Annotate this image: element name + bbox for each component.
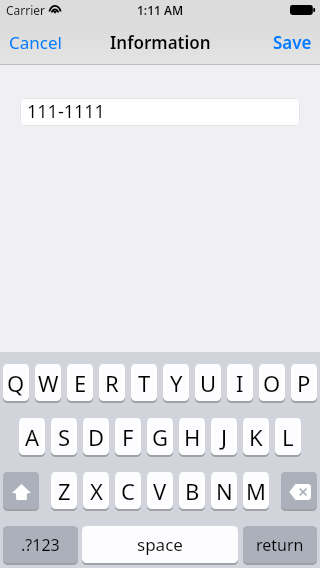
staticText: Y [170, 368, 183, 398]
staticText: E [74, 368, 87, 398]
staticText: space [137, 533, 183, 556]
button[interactable]: Backspace [281, 472, 317, 509]
button[interactable]: I [227, 364, 253, 401]
button[interactable]: Y [163, 364, 189, 401]
staticText: A [25, 422, 40, 452]
button[interactable]: C [115, 472, 141, 509]
button[interactable]: Save [264, 23, 320, 62]
button[interactable]: U [195, 364, 221, 401]
button[interactable]: M [243, 472, 269, 509]
staticText: M [246, 476, 266, 506]
staticText: O [263, 368, 281, 398]
staticText: 111-1111 [27, 99, 105, 124]
button[interactable]: E [67, 364, 93, 401]
staticText: Information [110, 31, 211, 54]
button[interactable]: B [179, 472, 205, 509]
button[interactable]: F [115, 418, 141, 455]
button[interactable]: Z [51, 472, 77, 509]
button[interactable]: Shift [3, 472, 39, 509]
button[interactable]: O [259, 364, 285, 401]
button[interactable]: J [211, 418, 237, 455]
button[interactable]: V [147, 472, 173, 509]
staticText: T [138, 368, 151, 398]
staticText: K [249, 422, 263, 452]
button[interactable]: H [179, 418, 205, 455]
staticText: C [121, 476, 135, 506]
staticText: 1:11 AM [137, 2, 184, 18]
staticText: return [256, 534, 304, 556]
staticText: S [58, 422, 71, 452]
button[interactable]: S [51, 418, 77, 455]
staticText: V [153, 476, 167, 506]
staticText: F [122, 422, 134, 452]
button[interactable]: X [83, 472, 109, 509]
staticText: Z [58, 476, 71, 506]
button[interactable]: P [291, 364, 317, 401]
staticText: N [216, 476, 233, 506]
button[interactable]: return [243, 526, 317, 563]
staticText: I [236, 368, 244, 398]
staticText: Carrier [6, 2, 46, 18]
staticText: Cancel [9, 31, 62, 54]
staticText: R [105, 368, 119, 398]
button[interactable]: space [82, 526, 238, 563]
staticText: P [297, 368, 311, 398]
staticText: H [184, 422, 201, 452]
button[interactable]: 111-1111 [20, 98, 300, 126]
button[interactable]: G [147, 418, 173, 455]
button[interactable]: .?123 [3, 526, 78, 563]
button[interactable]: T [131, 364, 157, 401]
button[interactable]: A [19, 418, 45, 455]
staticText: D [88, 422, 105, 452]
staticText: B [185, 476, 200, 506]
button[interactable]: R [99, 364, 125, 401]
button[interactable]: D [83, 418, 109, 455]
button[interactable]: L [275, 418, 301, 455]
button[interactable]: Q [3, 364, 29, 401]
staticText: Save [273, 31, 312, 54]
staticText: Q [7, 368, 25, 398]
button[interactable]: W [35, 364, 61, 401]
staticText: L [282, 422, 294, 452]
staticText: .?123 [21, 534, 60, 556]
button[interactable]: N [211, 472, 237, 509]
staticText: J [221, 422, 228, 452]
staticText: G [152, 422, 169, 452]
button[interactable]: K [243, 418, 269, 455]
button[interactable]: Cancel [0, 23, 71, 62]
staticText: X [90, 476, 103, 506]
staticText: U [200, 368, 217, 398]
staticText: W [38, 368, 59, 398]
